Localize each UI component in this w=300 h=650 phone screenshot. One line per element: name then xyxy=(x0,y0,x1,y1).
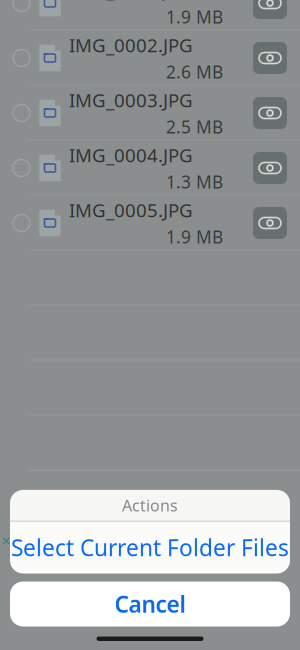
staticText: 2.6 MB xyxy=(166,60,223,83)
staticText: Cancel xyxy=(114,589,185,619)
staticText: 1.9 MB xyxy=(166,225,223,248)
staticText: Actions xyxy=(122,495,178,516)
staticText: 1.3 MB xyxy=(166,170,223,193)
staticText: IMG_0001.JPG xyxy=(69,0,193,2)
staticText: Select Current Folder Files xyxy=(11,532,289,562)
button[interactable]: Cancel xyxy=(10,581,290,626)
button[interactable]: IMG_0003.JPG xyxy=(0,85,300,140)
staticText: 2.5 MB xyxy=(166,115,223,138)
button[interactable]: IMG_0004.JPG xyxy=(0,140,300,195)
button[interactable]: IMG_0005.JPG xyxy=(0,195,300,250)
staticText: 1.9 MB xyxy=(166,5,223,28)
staticText: IMG_0003.JPG xyxy=(69,88,193,112)
button[interactable]: Select Current Folder Files xyxy=(10,521,290,573)
staticText: ✕ xyxy=(1,534,11,548)
button[interactable]: IMG_0002.JPG xyxy=(0,30,300,85)
staticText: IMG_0005.JPG xyxy=(69,198,193,222)
staticText: IMG_0002.JPG xyxy=(69,33,193,57)
staticText: IMG_0004.JPG xyxy=(69,143,193,167)
button[interactable]: IMG_0001.JPG xyxy=(0,0,300,30)
